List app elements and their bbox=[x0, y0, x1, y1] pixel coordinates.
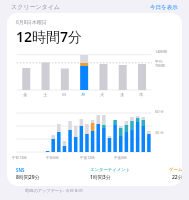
button[interactable]: 今日を表示 bbox=[150, 4, 178, 11]
staticText: 22分 bbox=[172, 174, 182, 181]
staticText: スクリーンタイム bbox=[11, 3, 60, 11]
staticText: 月 bbox=[81, 92, 86, 97]
staticText: ゲーム bbox=[169, 167, 182, 173]
staticText: 火 bbox=[100, 92, 105, 97]
staticText: 60 分 bbox=[155, 109, 165, 114]
staticText: 6月8日木曜日 bbox=[16, 19, 47, 26]
staticText: 日 bbox=[62, 92, 67, 97]
staticText: 平均 bbox=[155, 59, 163, 64]
staticText: 今日を表示 bbox=[150, 4, 178, 11]
staticText: 土 bbox=[43, 92, 48, 97]
staticText: 8時間29分 bbox=[16, 174, 40, 181]
button[interactable]: 6月8日木曜日 bbox=[7, 13, 182, 186]
staticText: エンターテイメント bbox=[90, 167, 131, 173]
staticText: SNS bbox=[16, 167, 25, 173]
staticText: 前回のアップデート: 今日 8:01 bbox=[25, 188, 84, 194]
staticText: 水 bbox=[120, 92, 125, 97]
staticText: 木 bbox=[139, 92, 144, 97]
staticText: 午前6時 bbox=[46, 155, 59, 160]
staticText: 14時間 bbox=[155, 49, 167, 54]
staticText: 30 分 bbox=[155, 130, 165, 135]
staticText: 午前12時 bbox=[12, 155, 27, 160]
staticText: 金 bbox=[23, 92, 28, 97]
staticText: 午後12時 bbox=[80, 155, 95, 160]
staticText: 午後6時 bbox=[114, 155, 127, 160]
staticText: 7時間 bbox=[155, 63, 165, 68]
staticText: 12時間7分 bbox=[16, 27, 83, 46]
staticText: 1時間3分 bbox=[90, 174, 111, 181]
